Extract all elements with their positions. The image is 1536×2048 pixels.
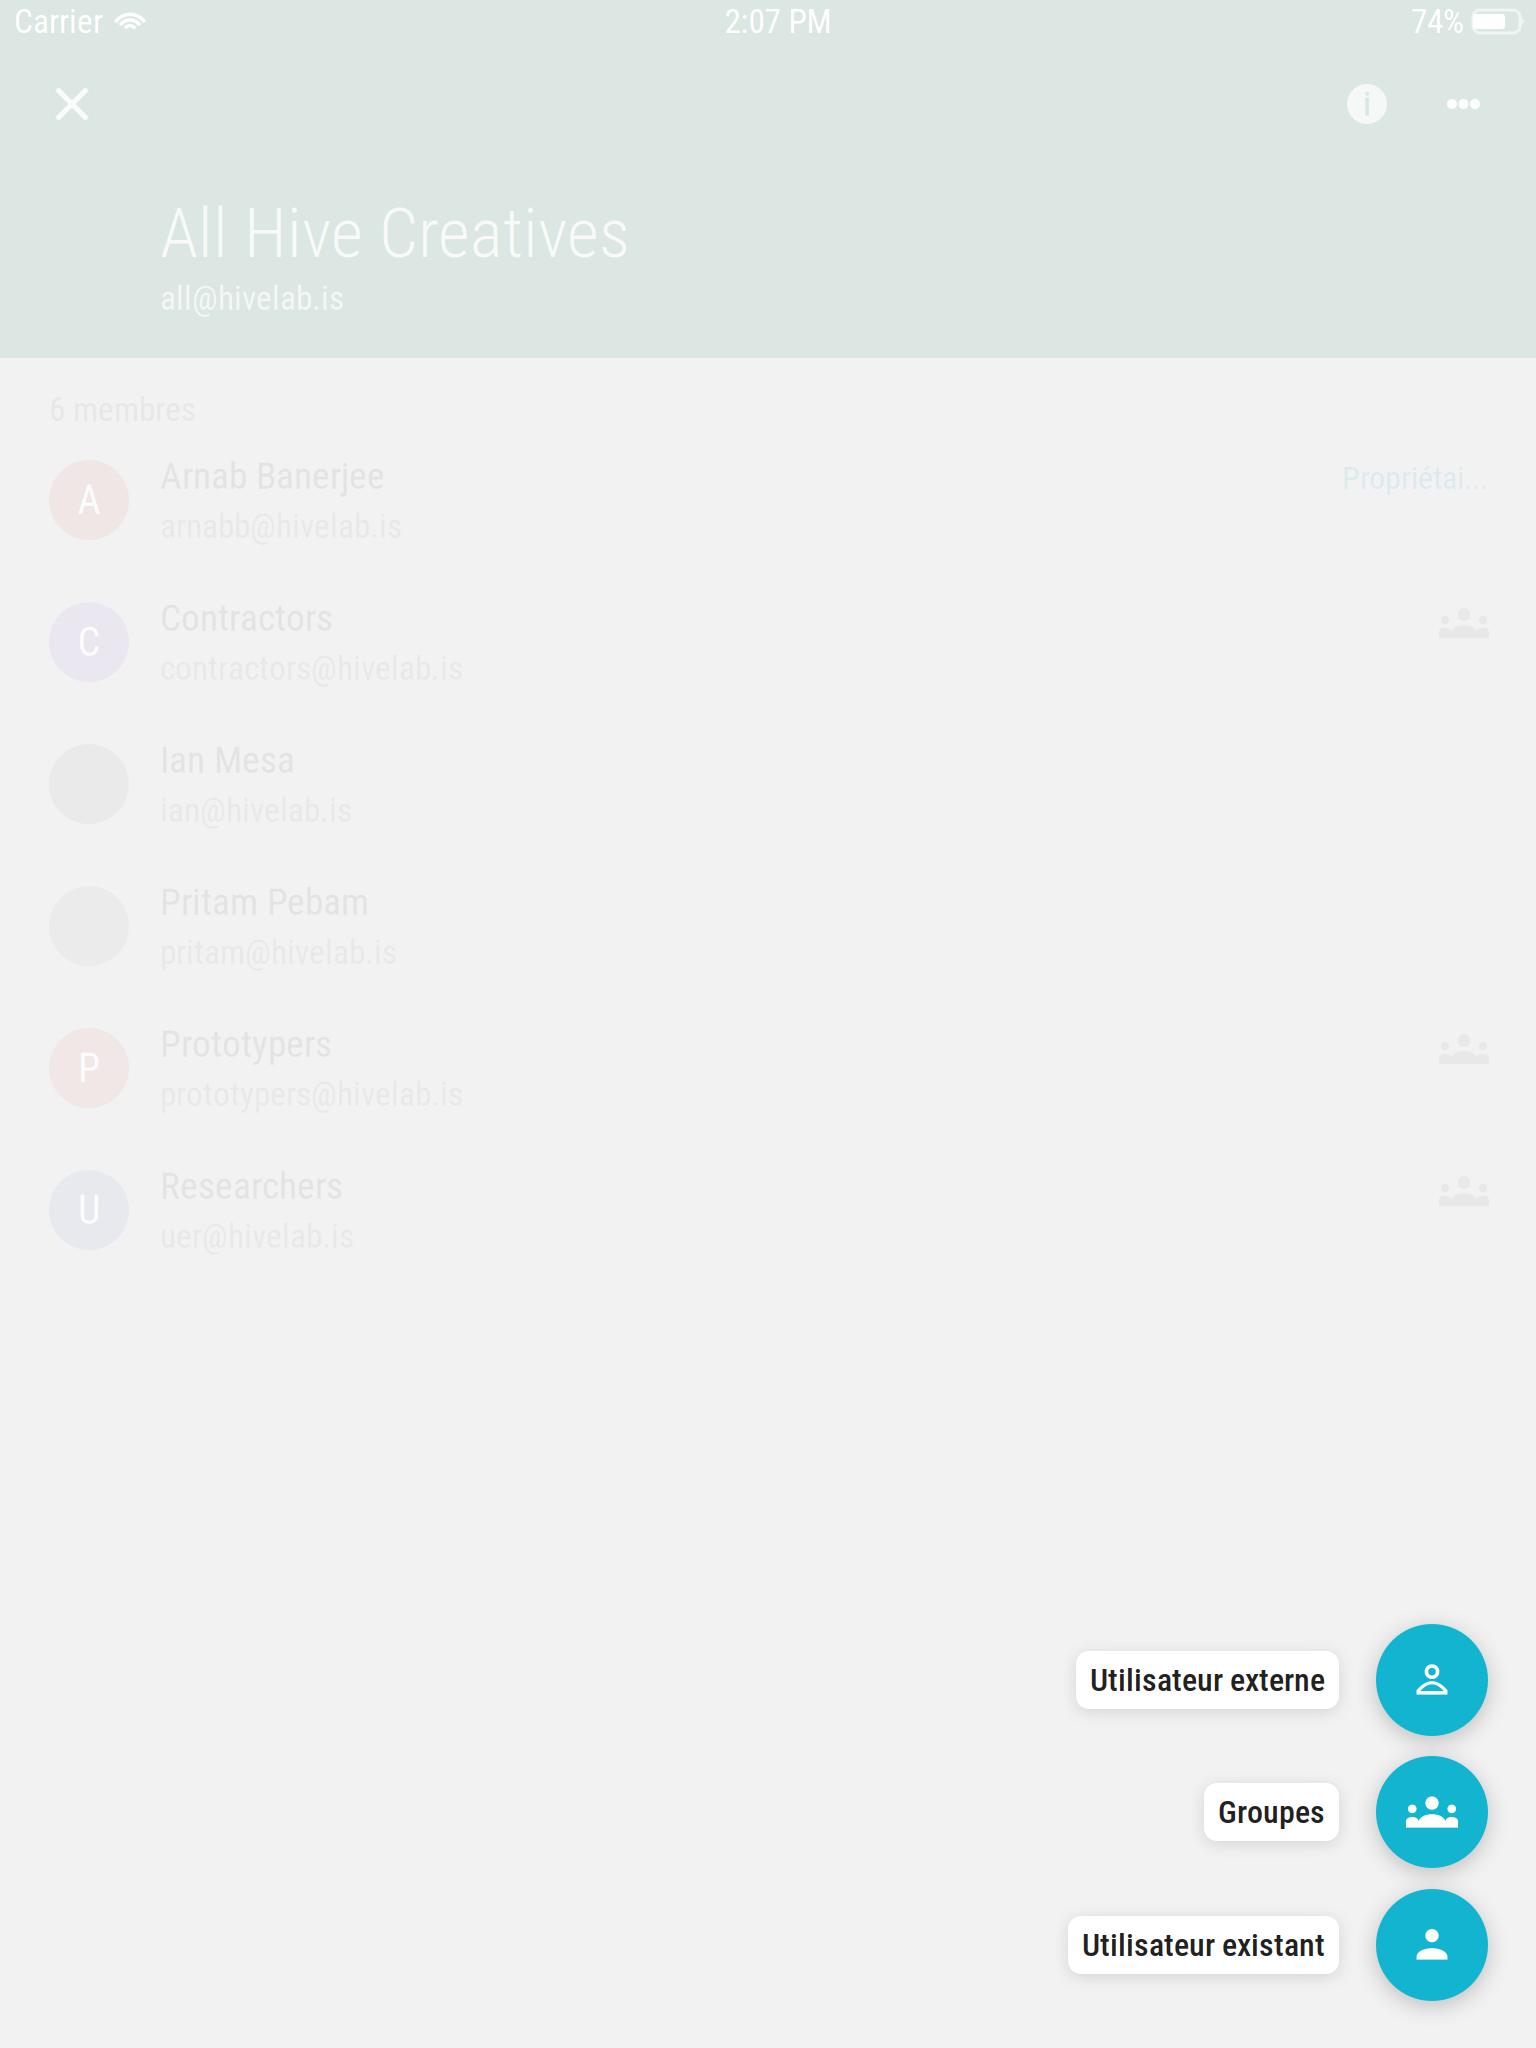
staticText: Pritam Pebam bbox=[160, 880, 369, 924]
button[interactable]: Groupes bbox=[1204, 1783, 1339, 1841]
button[interactable]: Utilisateur externe bbox=[1076, 1651, 1339, 1709]
button[interactable]: Groupes bbox=[1339, 1756, 1536, 1868]
button[interactable]: More bbox=[1417, 64, 1536, 144]
staticText: contractors@hivelab.is bbox=[160, 649, 463, 688]
staticText: 74% bbox=[1411, 2, 1464, 41]
staticText: arnabb@hivelab.is bbox=[160, 507, 402, 546]
staticText: Contractors bbox=[160, 596, 333, 640]
button[interactable]: Utilisateur existant bbox=[1339, 1889, 1536, 2001]
staticText: Ian Mesa bbox=[160, 738, 295, 782]
staticText: P bbox=[78, 1045, 100, 1091]
staticText: 6 membres bbox=[49, 390, 196, 429]
button[interactable]: Info bbox=[1319, 59, 1417, 149]
staticText: Carrier bbox=[14, 2, 103, 41]
staticText: i bbox=[1363, 84, 1371, 124]
staticText: U bbox=[78, 1187, 100, 1233]
staticText: Researchers bbox=[160, 1164, 343, 1208]
staticText: C bbox=[77, 619, 100, 665]
staticText: all@hivelab.is bbox=[160, 279, 344, 318]
staticText: Utilisateur externe bbox=[1090, 1661, 1325, 1699]
staticText: Prototypers bbox=[160, 1022, 332, 1066]
staticText: Utilisateur existant bbox=[1082, 1926, 1325, 1964]
staticText: Groupes bbox=[1218, 1793, 1325, 1831]
staticText: ian@hivelab.is bbox=[160, 791, 352, 830]
staticText: pritam@hivelab.is bbox=[160, 933, 397, 972]
staticText: prototypers@hivelab.is bbox=[160, 1075, 463, 1114]
staticText: uer@hivelab.is bbox=[160, 1217, 354, 1256]
staticText: Propriétai... bbox=[1342, 459, 1488, 497]
staticText: A bbox=[77, 477, 100, 523]
button[interactable]: Utilisateur existant bbox=[1068, 1916, 1339, 1974]
staticText: 2:07 PM bbox=[724, 2, 831, 41]
staticText: All Hive Creatives bbox=[160, 193, 630, 274]
button[interactable]: Close bbox=[0, 59, 117, 149]
staticText: Arnab Banerjee bbox=[160, 454, 385, 498]
button[interactable]: Utilisateur externe bbox=[1339, 1624, 1536, 1736]
